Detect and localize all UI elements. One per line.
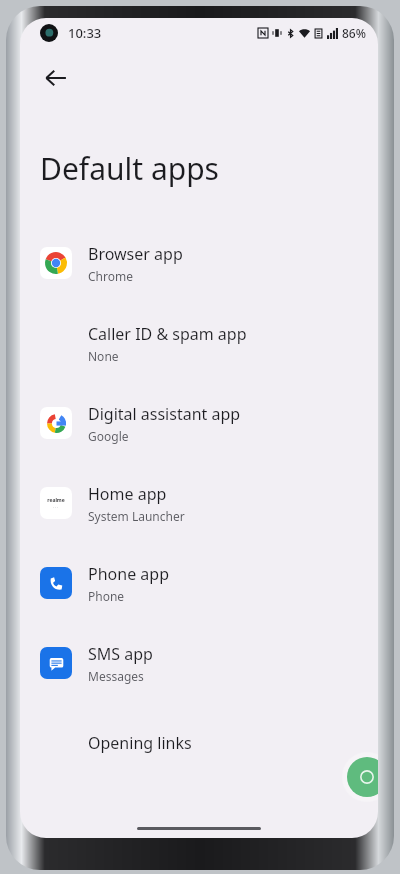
button[interactable]: realme (20, 463, 378, 543)
button[interactable]: SMS app (20, 623, 378, 703)
staticText: Google (88, 428, 129, 444)
staticText: Chrome (88, 268, 133, 284)
button[interactable]: Phone app (20, 543, 378, 623)
button[interactable]: Digital assistant app (20, 383, 378, 463)
button[interactable]: Back (32, 54, 80, 102)
staticText: realme (47, 497, 65, 504)
staticText: Phone app (88, 563, 169, 585)
staticText: Phone (88, 588, 125, 604)
staticText: Home app (88, 483, 167, 505)
staticText: None (88, 348, 119, 364)
staticText: Browser app (88, 243, 183, 265)
staticText: Digital assistant app (88, 403, 241, 425)
staticText: System Launcher (88, 508, 185, 524)
staticText: 86% (342, 25, 366, 41)
staticText: Opening links (88, 732, 192, 754)
staticText: · · · (53, 505, 59, 510)
button[interactable]: Caller ID & spam app (20, 303, 378, 383)
button[interactable]: Browser app (20, 223, 378, 303)
staticText: Messages (88, 668, 144, 684)
button[interactable]: Opening links (20, 703, 378, 783)
staticText: 10:33 (68, 24, 102, 42)
staticText: Caller ID & spam app (88, 323, 247, 345)
staticText: Default apps (40, 148, 219, 189)
button[interactable]: Assistant (347, 757, 378, 797)
staticText: SMS app (88, 643, 153, 665)
